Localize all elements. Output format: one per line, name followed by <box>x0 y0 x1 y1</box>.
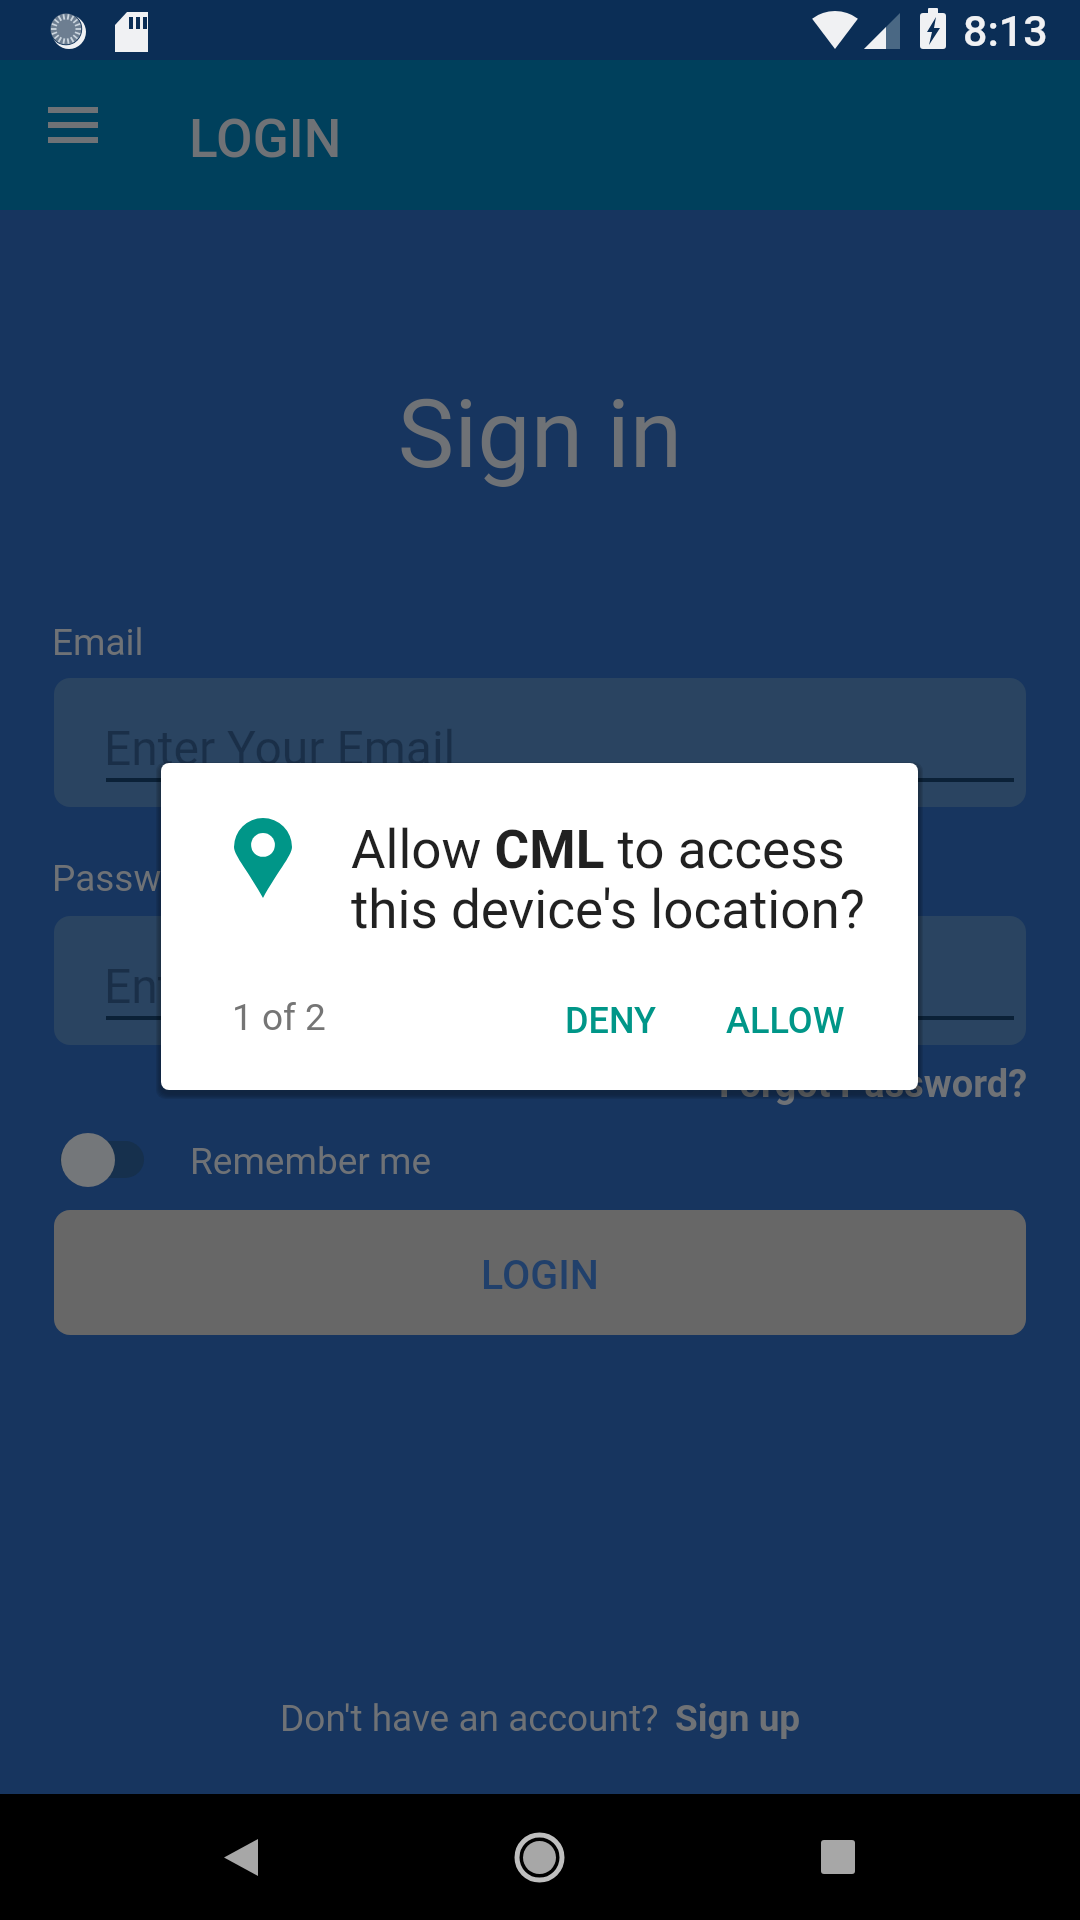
button[interactable]: Enter Your Email <box>54 678 1026 807</box>
staticText: 8:13 <box>963 6 1048 56</box>
button[interactable]: Back <box>166 1794 316 1920</box>
staticText: Password <box>52 857 216 900</box>
button[interactable]: Sign up <box>675 1697 801 1740</box>
staticText: LOGIN <box>189 108 342 170</box>
button[interactable]: Enter Your Password <box>54 916 1026 1045</box>
button[interactable]: Forgot Password? <box>719 1062 1080 1107</box>
staticText: DENY <box>565 1000 656 1042</box>
button[interactable]: Home <box>464 1794 614 1920</box>
button[interactable]: DENY <box>537 978 684 1064</box>
button[interactable]: Open navigation menu <box>14 68 132 182</box>
staticText: Don't have an account? <box>280 1697 659 1740</box>
staticText: 1 of 2 <box>232 996 326 1039</box>
staticText: Allow CML to access this device's locati… <box>351 819 875 941</box>
button[interactable]: LOGIN <box>54 1210 1026 1335</box>
button[interactable]: Remember me toggle <box>54 1130 154 1192</box>
staticText: Enter Your Password <box>104 958 549 1014</box>
staticText: Remember me <box>190 1140 432 1183</box>
staticText: LOGIN <box>481 1251 599 1299</box>
staticText: ALLOW <box>726 1000 845 1042</box>
button[interactable]: ALLOW <box>698 978 873 1064</box>
staticText: Sign in <box>0 379 1080 490</box>
staticText: Enter Your Email <box>104 720 456 776</box>
button[interactable]: Recent apps <box>763 1794 913 1920</box>
staticText: Email <box>52 621 144 664</box>
